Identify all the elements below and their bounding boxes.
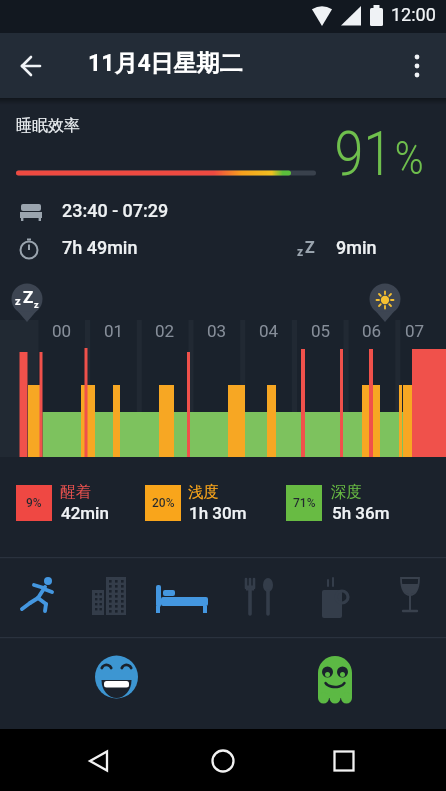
staticText: 05 — [311, 321, 331, 341]
staticText: 00 — [52, 321, 72, 341]
button[interactable] — [297, 562, 371, 632]
staticText: 9% — [26, 496, 42, 510]
staticText: 深度 — [331, 482, 362, 502]
staticText: 1h 30m — [189, 503, 247, 523]
button[interactable] — [255, 645, 415, 711]
staticText: 7h 49min — [62, 237, 138, 258]
staticText: Z — [305, 238, 315, 257]
button[interactable] — [223, 562, 297, 632]
staticText: 07 — [405, 321, 425, 341]
staticText: z — [34, 300, 39, 311]
staticText: 醒着 — [60, 482, 91, 502]
staticText: 11月4日星期二 — [88, 49, 243, 78]
button[interactable] — [74, 562, 148, 632]
button[interactable] — [398, 45, 440, 87]
staticText: % — [395, 131, 424, 185]
staticText: z — [297, 245, 304, 259]
button[interactable] — [149, 562, 223, 632]
staticText: 20% — [152, 496, 175, 510]
button[interactable] — [372, 562, 446, 632]
staticText: 04 — [259, 321, 279, 341]
staticText: 9min — [336, 237, 377, 258]
staticText: Z — [23, 287, 34, 307]
staticText: 91 — [334, 117, 392, 190]
staticText: 02 — [155, 321, 175, 341]
staticText: 06 — [362, 321, 382, 341]
button[interactable] — [188, 736, 258, 786]
staticText: 睡眠效率 — [16, 116, 80, 136]
button[interactable] — [0, 562, 74, 632]
staticText: 12:00 — [391, 4, 436, 25]
staticText: z — [15, 295, 21, 308]
staticText: 23:40 - 07:29 — [62, 200, 169, 221]
button[interactable] — [70, 736, 140, 786]
staticText: 01 — [104, 321, 124, 341]
staticText: 42min — [61, 503, 109, 523]
staticText: 03 — [207, 321, 227, 341]
staticText: 5h 36m — [332, 503, 390, 523]
button[interactable] — [10, 45, 52, 87]
button[interactable] — [40, 645, 200, 711]
button[interactable] — [310, 736, 380, 786]
staticText: 71% — [293, 496, 316, 510]
staticText: 浅度 — [188, 482, 219, 502]
